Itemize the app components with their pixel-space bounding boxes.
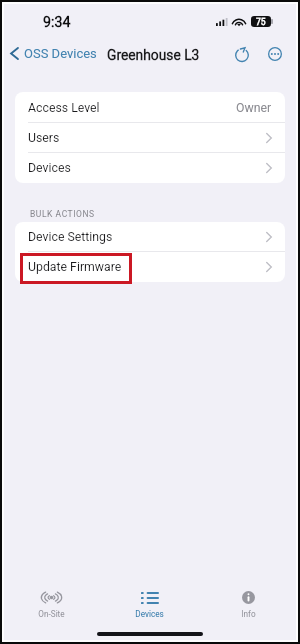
staticText: BULK ACTIONS (30, 209, 95, 219)
button[interactable]: Devices (15, 153, 285, 183)
button[interactable]: Refresh (231, 44, 253, 66)
staticText: On-Site (38, 609, 65, 619)
button[interactable]: Device Settings (15, 222, 285, 252)
button[interactable]: OSS Devices (2, 46, 103, 61)
staticText: Greenhouse L3 (107, 47, 200, 63)
staticText: Device Settings (28, 230, 113, 244)
staticText: Access Level (28, 101, 100, 115)
button[interactable]: On-Site (2, 575, 100, 623)
button[interactable]: Update Firmware (15, 252, 285, 282)
staticText: Update Firmware (28, 260, 122, 274)
button[interactable]: Access Level (15, 92, 285, 123)
staticText: Users (28, 131, 60, 145)
staticText: OSS Devices (24, 46, 97, 61)
staticText: 9:34 (43, 14, 71, 31)
button[interactable]: Devices (100, 575, 199, 623)
staticText: 75 (256, 17, 266, 27)
button[interactable]: More options (264, 43, 286, 65)
staticText: Devices (135, 609, 164, 619)
staticText: Info (241, 609, 256, 619)
button[interactable]: Info (199, 575, 298, 623)
staticText: Owner (236, 101, 272, 115)
button[interactable]: Users (15, 123, 285, 153)
staticText: Devices (28, 161, 71, 175)
